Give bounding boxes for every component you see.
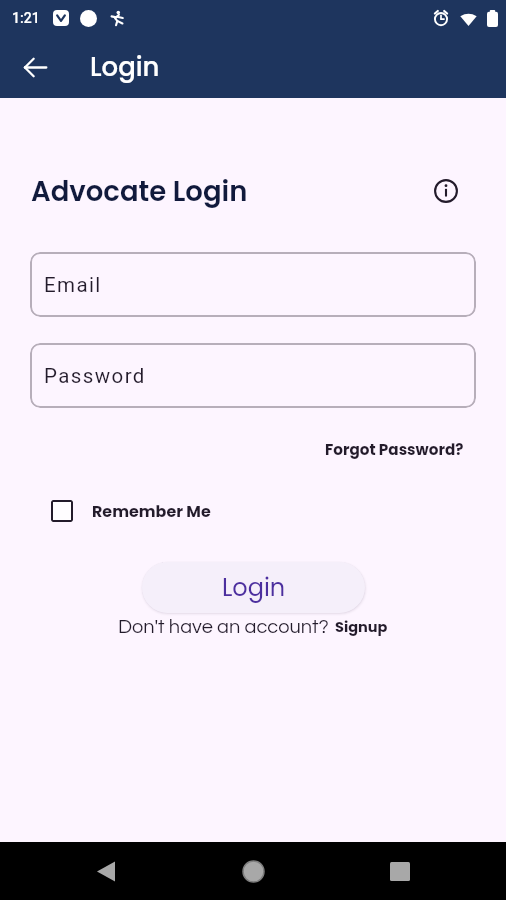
staticText: Forgot Password? [325,439,464,460]
button[interactable]: Remember Me [39,494,211,528]
button[interactable]: Home [212,842,294,900]
staticText: 1:21 [12,10,40,26]
staticText: Don't have an account? [118,617,329,638]
staticText: Login [90,49,160,85]
button[interactable]: Email [30,252,476,317]
button[interactable]: Login [142,562,365,613]
button[interactable]: Forgot Password? [325,439,464,460]
button[interactable]: Back [65,842,147,900]
staticText: Advocate Login [31,172,248,210]
staticText: Password [44,364,146,388]
staticText: Login [222,571,286,605]
button[interactable]: Recent apps [359,842,441,900]
staticText: Email [44,273,102,297]
button[interactable]: Password [30,343,476,408]
staticText: Remember Me [92,500,211,522]
button[interactable]: Information [428,173,464,209]
staticText: Signup [335,617,388,637]
button[interactable]: Signup [335,617,388,637]
button[interactable]: Back [13,45,58,90]
